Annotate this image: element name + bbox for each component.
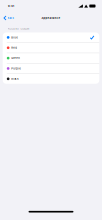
button[interactable]: Purple [3, 63, 99, 73]
staticText: Appearance [41, 16, 60, 19]
staticText: Green [11, 56, 20, 60]
button[interactable]: Back [0, 12, 16, 24]
button[interactable]: Green [3, 53, 99, 63]
button[interactable]: Blue [3, 32, 99, 42]
staticText: 9:41 [8, 4, 14, 7]
button[interactable]: Black [3, 74, 99, 84]
staticText: Black [11, 77, 18, 80]
staticText: ACCENT COLOR [8, 27, 30, 30]
staticText: Red [11, 46, 17, 49]
button[interactable]: Red [3, 43, 99, 53]
staticText: Back [7, 16, 13, 19]
staticText: Blue [11, 36, 18, 39]
staticText: Purple [11, 67, 21, 70]
